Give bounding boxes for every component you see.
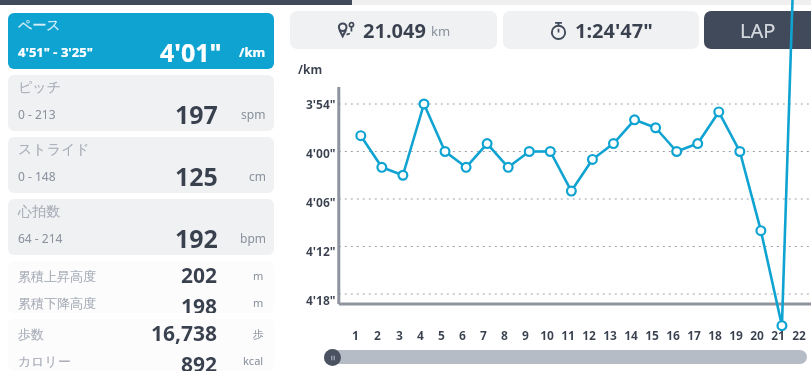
button[interactable]: 1:24'47" [503, 11, 699, 49]
button[interactable]: 21.049 [290, 11, 497, 49]
staticText: ペース [18, 17, 61, 35]
button[interactable]: LAP [704, 11, 811, 49]
staticText: m [253, 295, 264, 310]
staticText: 202 [181, 261, 218, 290]
staticText: 16 [666, 327, 680, 343]
staticText: 198 [181, 292, 218, 313]
staticText: 13 [603, 327, 617, 343]
staticText: 4'06" [306, 194, 336, 210]
staticText: 4'01" [160, 35, 222, 69]
staticText: 3 [396, 327, 403, 343]
staticText: /km [239, 43, 266, 61]
staticText: 0 - 213 [18, 106, 56, 122]
staticText: 2 [374, 327, 381, 343]
staticText: 15 [645, 327, 659, 343]
staticText: 14 [624, 327, 638, 343]
staticText: 4'51" - 3'25" [18, 43, 93, 61]
staticText: ピッチ [18, 79, 61, 97]
staticText: 9 [522, 327, 529, 343]
staticText: 10 [540, 327, 554, 343]
staticText: 歩数 [18, 326, 44, 342]
button[interactable]: 歩数 [8, 319, 274, 371]
staticText: ストライド [18, 141, 90, 159]
staticText: 192 [175, 221, 218, 255]
staticText: 5 [438, 327, 445, 343]
button[interactable]: Scroll chart horizontally [324, 348, 807, 366]
staticText: 12 [582, 327, 596, 343]
staticText: 4'18" [306, 292, 336, 308]
button[interactable]: 心拍数 [8, 199, 274, 255]
staticText: 累積上昇高度 [18, 268, 96, 284]
staticText: 20 [750, 327, 764, 343]
staticText: 21.049 [363, 17, 426, 44]
staticText: 16,738 [151, 319, 218, 348]
staticText: 18 [708, 327, 722, 343]
staticText: 17 [687, 327, 701, 343]
staticText: 4'12" [306, 243, 336, 259]
staticText: 19 [729, 327, 743, 343]
staticText: 1:24'47" [575, 17, 653, 44]
staticText: 8 [501, 327, 508, 343]
staticText: m [253, 268, 264, 283]
staticText: spm [241, 106, 266, 122]
staticText: 心拍数 [18, 203, 60, 221]
button[interactable]: ピッチ [8, 75, 274, 131]
staticText: 64 - 214 [18, 230, 63, 246]
staticText: 累積下降高度 [18, 295, 96, 311]
staticText: 歩 [253, 327, 264, 341]
staticText: 3'54" [306, 96, 336, 112]
staticText: cm [249, 168, 266, 184]
button[interactable]: ペース [8, 13, 274, 69]
button[interactable]: 累積上昇高度 [8, 261, 274, 313]
staticText: カロリー [18, 353, 71, 369]
staticText: /km [298, 61, 323, 77]
staticText: 125 [175, 159, 218, 193]
staticText: km [431, 22, 451, 40]
staticText: 0 - 148 [18, 168, 56, 184]
staticText: 21 [771, 327, 785, 343]
staticText: 11 [561, 327, 575, 343]
staticText: 6 [459, 327, 466, 343]
staticText: 197 [175, 97, 218, 131]
staticText: 22 [792, 327, 806, 343]
staticText: 892 [181, 350, 218, 371]
staticText: 1 [352, 327, 359, 343]
staticText: bpm [240, 230, 266, 246]
staticText: 7 [480, 327, 487, 343]
staticText: 4 [417, 327, 424, 343]
staticText: 4'00" [306, 145, 336, 161]
staticText: LAP [740, 17, 776, 44]
staticText: kcal [243, 353, 264, 368]
button[interactable]: ストライド [8, 137, 274, 193]
